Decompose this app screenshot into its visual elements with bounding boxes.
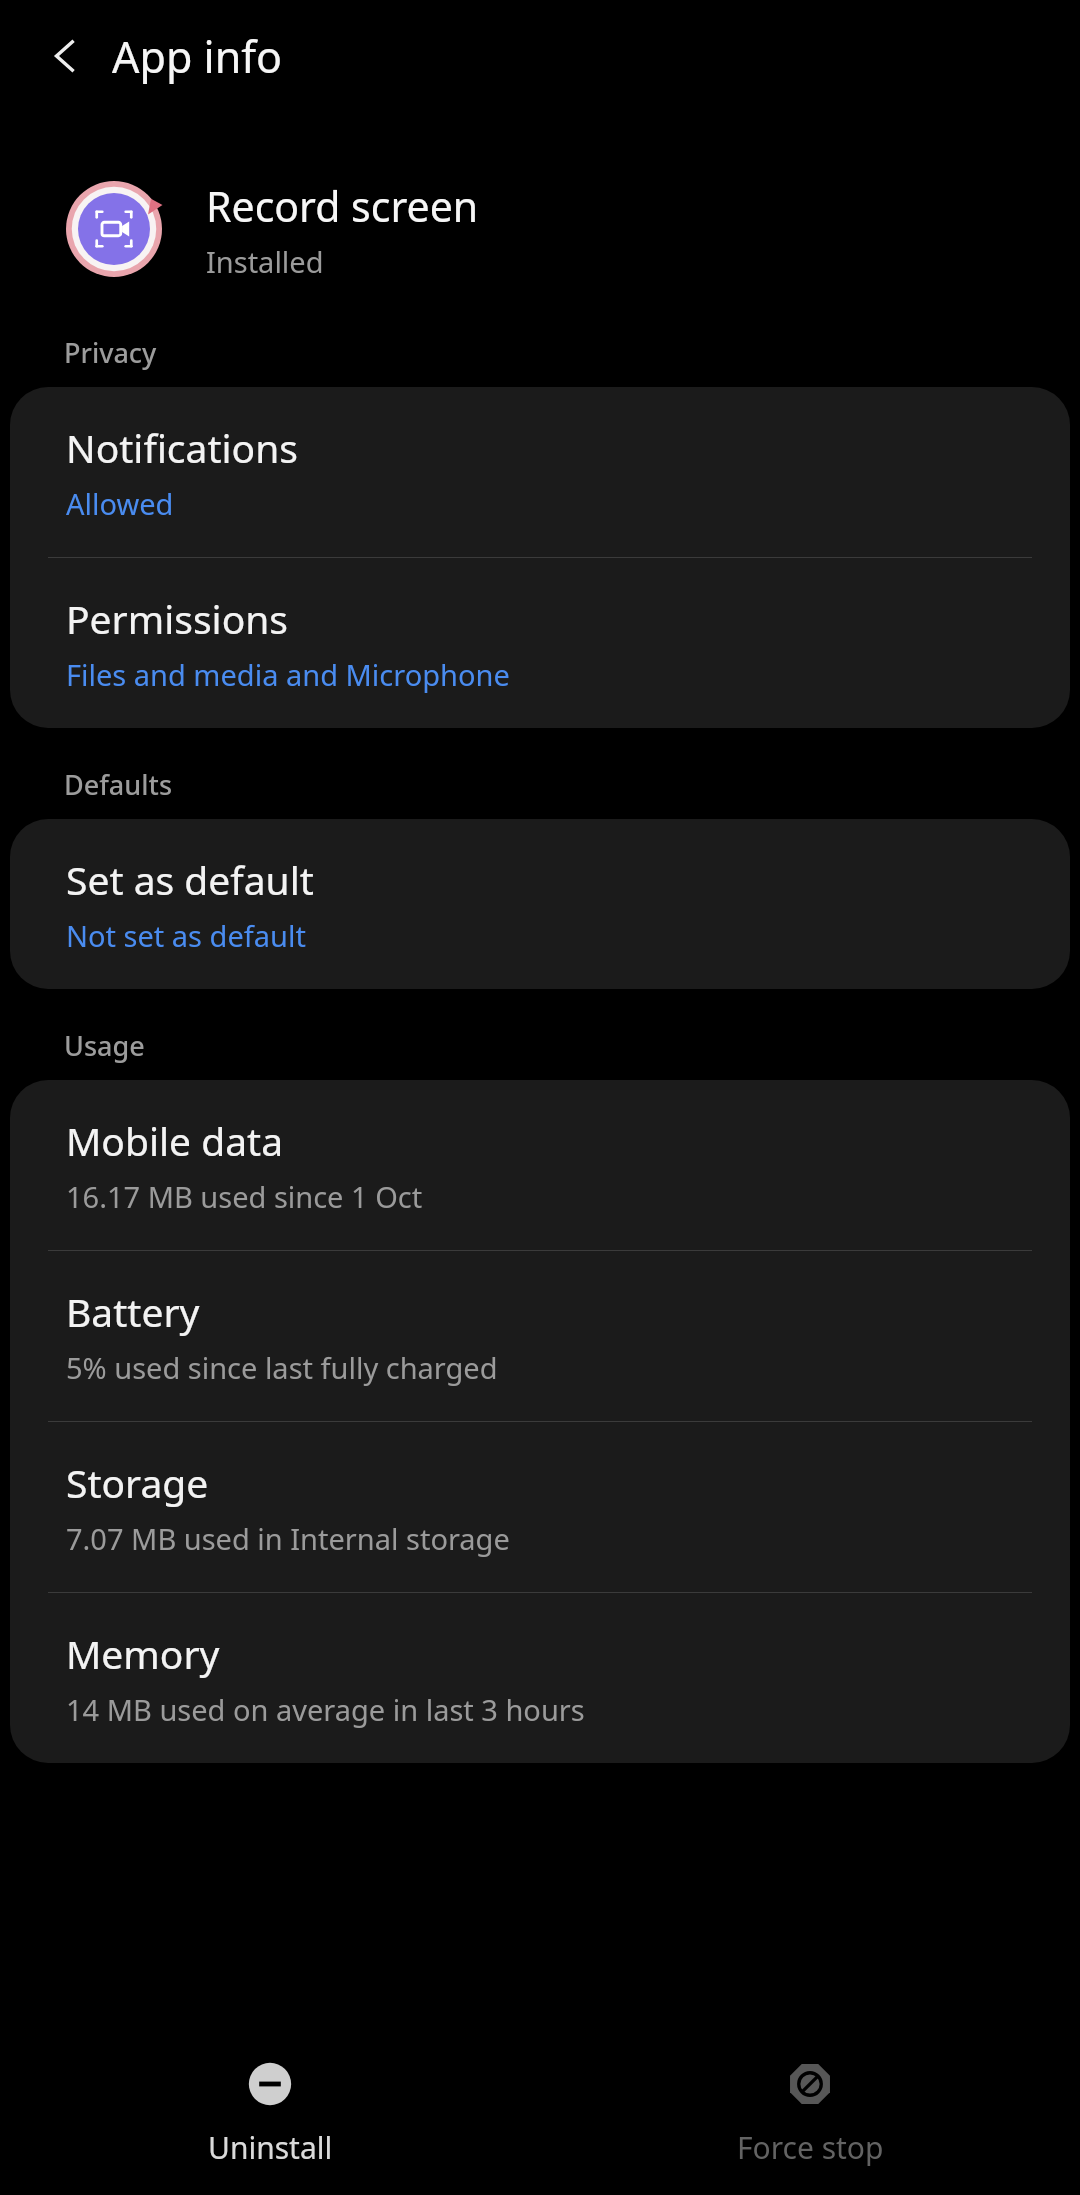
staticText: Permissions xyxy=(66,592,289,645)
staticText: Mobile data xyxy=(66,1114,284,1167)
staticText: Set as default xyxy=(66,853,314,906)
button[interactable]: Set as default xyxy=(10,819,1070,989)
button[interactable]: Permissions xyxy=(10,558,1070,728)
staticText: Installed xyxy=(206,242,324,281)
staticText: Usage xyxy=(64,1027,145,1064)
button[interactable]: Back xyxy=(32,22,100,90)
staticText: Battery xyxy=(66,1285,200,1338)
staticText: Memory xyxy=(66,1627,220,1680)
staticText: 16.17 MB used since 1 Oct xyxy=(66,1177,423,1216)
staticText: Privacy xyxy=(64,334,157,371)
staticText: Allowed xyxy=(66,484,174,523)
button[interactable]: Mobile data xyxy=(10,1080,1070,1250)
button[interactable]: Uninstall xyxy=(0,2043,540,2168)
staticText: Storage xyxy=(66,1456,209,1509)
button[interactable]: Force stop xyxy=(540,2043,1080,2168)
button[interactable]: Record screen xyxy=(0,174,1080,284)
other: Uninstall xyxy=(247,2061,293,2107)
staticText: 5% used since last fully charged xyxy=(66,1348,498,1387)
staticText: Record screen xyxy=(206,178,479,234)
staticText: 14 MB used on average in last 3 hours xyxy=(66,1690,585,1729)
staticText: Files and media and Microphone xyxy=(66,655,510,694)
staticText: Notifications xyxy=(66,421,298,474)
button[interactable]: Memory xyxy=(10,1593,1070,1763)
staticText: Force stop xyxy=(737,2127,884,2168)
button[interactable]: Storage xyxy=(10,1422,1070,1592)
staticText: 7.07 MB used in Internal storage xyxy=(66,1519,510,1558)
staticText: Not set as default xyxy=(66,916,306,955)
other: Force stop xyxy=(787,2061,833,2107)
staticText: Defaults xyxy=(64,766,172,803)
staticText: App info xyxy=(112,27,283,86)
button[interactable]: Battery xyxy=(10,1251,1070,1421)
button[interactable]: Notifications xyxy=(10,387,1070,557)
staticText: Uninstall xyxy=(208,2127,333,2168)
